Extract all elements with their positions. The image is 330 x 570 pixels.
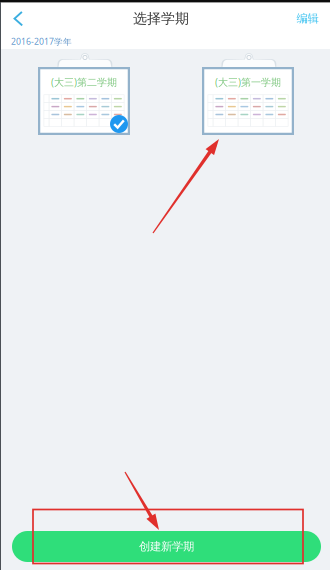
staticText: 2016-2017学年 (11, 35, 72, 47)
button[interactable]: 编辑 (285, 3, 330, 33)
staticText: (大三)第一学期 (215, 75, 281, 89)
staticText: 选择学期 (133, 10, 189, 27)
button[interactable]: (大三)第二学期 (38, 67, 130, 135)
staticText: 创建新学期 (139, 539, 194, 554)
button[interactable]: (大三)第一学期 (202, 67, 294, 135)
staticText: (大三)第二学期 (51, 75, 117, 89)
button[interactable]: 创建新学期 (12, 531, 321, 562)
staticText: 编辑 (296, 11, 318, 26)
button[interactable]: Back (0, 3, 37, 33)
